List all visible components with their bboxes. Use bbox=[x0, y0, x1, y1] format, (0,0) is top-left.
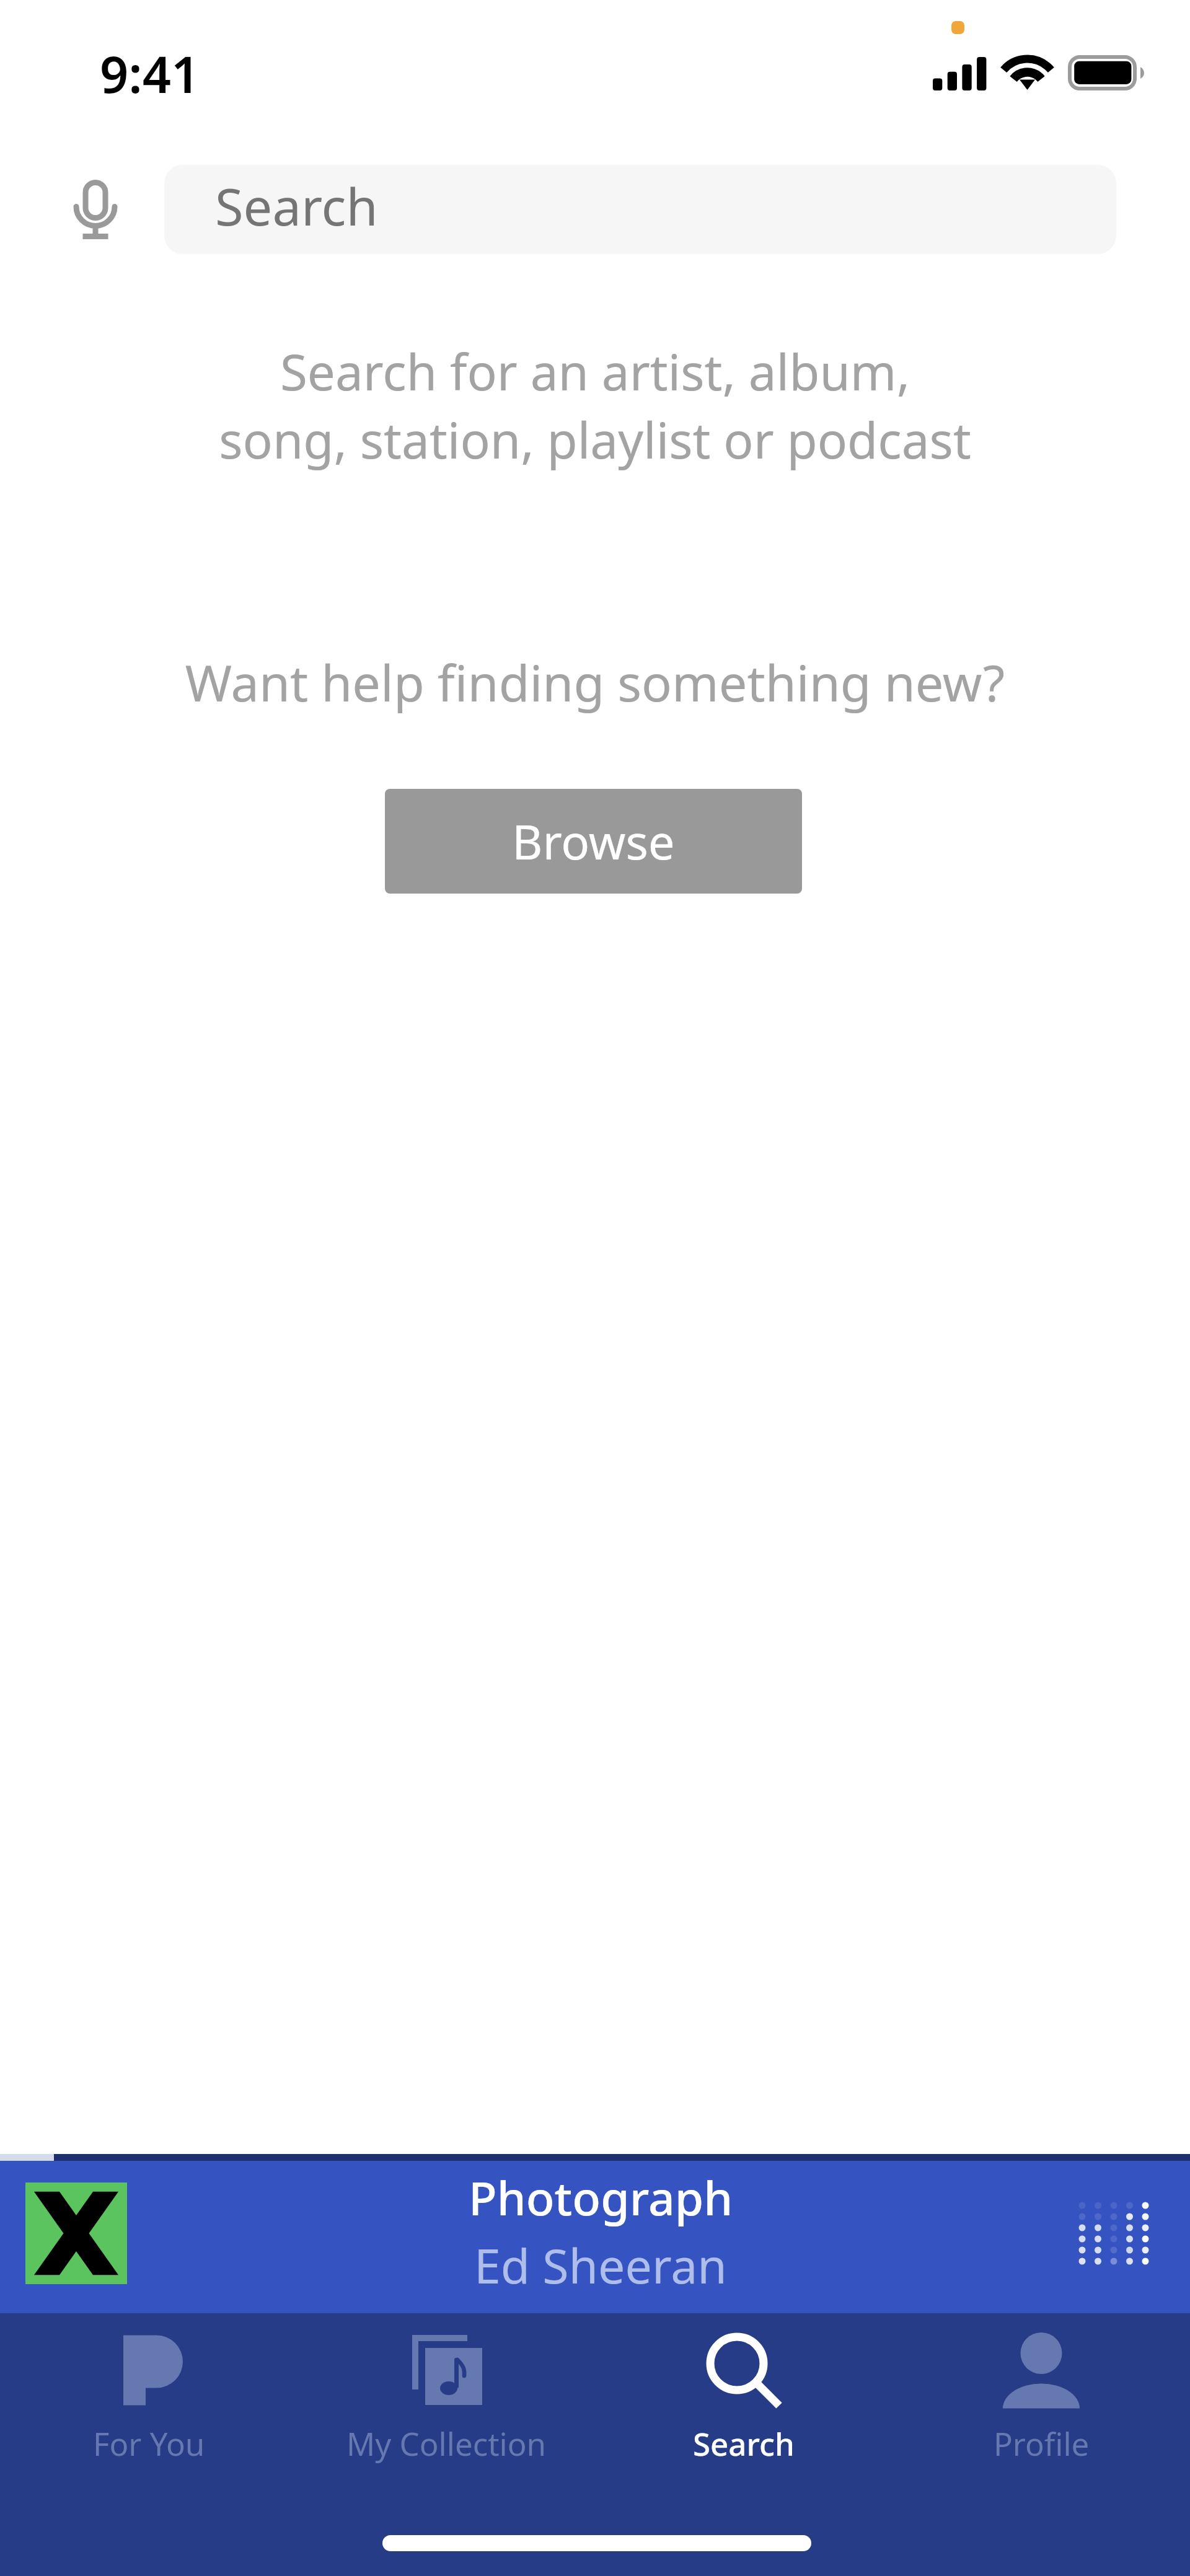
button[interactable]: Photograph bbox=[0, 2161, 1190, 2313]
button[interactable]: Profile bbox=[892, 2313, 1190, 2487]
staticText: Browse bbox=[512, 809, 675, 874]
button[interactable]: Voice search bbox=[61, 172, 130, 247]
staticText: Profile bbox=[994, 2422, 1090, 2464]
button[interactable]: Browse bbox=[385, 789, 802, 894]
staticText: Search for an artist, album, song, stati… bbox=[0, 337, 1190, 473]
button[interactable]: For You bbox=[0, 2313, 297, 2487]
staticText: Search bbox=[693, 2422, 795, 2464]
button[interactable]: Search bbox=[595, 2313, 892, 2487]
staticText: Ed Sheeran bbox=[474, 2233, 727, 2298]
button[interactable]: My Collection bbox=[297, 2313, 595, 2487]
staticText: My Collection bbox=[346, 2422, 547, 2464]
staticText: Photograph bbox=[469, 2166, 733, 2229]
staticText: Want help finding something new? bbox=[0, 648, 1190, 716]
staticText: For You bbox=[93, 2422, 205, 2464]
staticText: 9:41 bbox=[100, 39, 200, 107]
button[interactable]: Now playing bbox=[1075, 2196, 1153, 2271]
button[interactable]: Search bbox=[164, 165, 1116, 254]
staticText: Search bbox=[215, 170, 378, 240]
